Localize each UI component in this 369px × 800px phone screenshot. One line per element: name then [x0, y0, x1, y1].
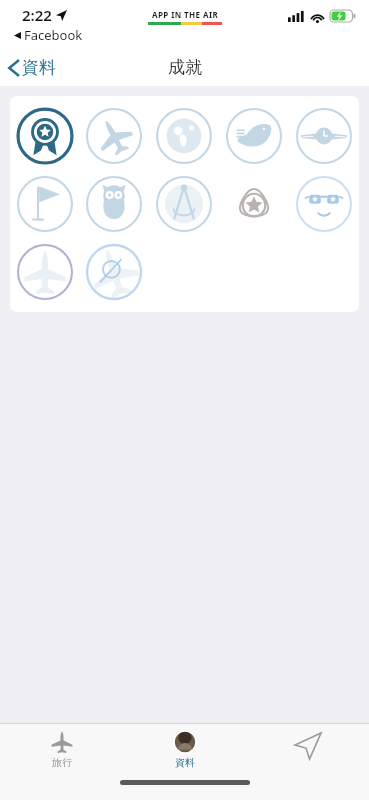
button[interactable]: BOEING: [79, 238, 149, 306]
staticText: Facebook: [24, 26, 83, 44]
button[interactable]: GLOBE: [149, 102, 219, 170]
button[interactable]: WINGCLOCK: [289, 102, 359, 170]
button[interactable]: COOL: [289, 170, 359, 238]
button[interactable]: Send: [246, 724, 369, 776]
button[interactable]: AEROSTAR: [219, 170, 289, 238]
button[interactable]: CRANE: [219, 102, 289, 170]
button[interactable]: 資料: [123, 724, 246, 776]
button[interactable]: COMPASS: [149, 170, 219, 238]
staticText: 旅行: [52, 756, 72, 769]
staticText: 成就: [168, 57, 202, 78]
button[interactable]: OWL: [79, 170, 149, 238]
staticText: APP IN THE AIR: [152, 9, 219, 20]
button[interactable]: FLAG: [10, 170, 79, 238]
button[interactable]: 資料: [0, 53, 68, 82]
button[interactable]: 旅行: [0, 724, 123, 776]
button[interactable]: AIRBUS: [10, 238, 79, 306]
staticText: 2:22: [22, 5, 52, 25]
button[interactable]: MEDAL: [10, 102, 79, 170]
button[interactable]: PLANE: [79, 102, 149, 170]
staticText: 資料: [22, 57, 56, 78]
staticText: 資料: [175, 756, 195, 769]
